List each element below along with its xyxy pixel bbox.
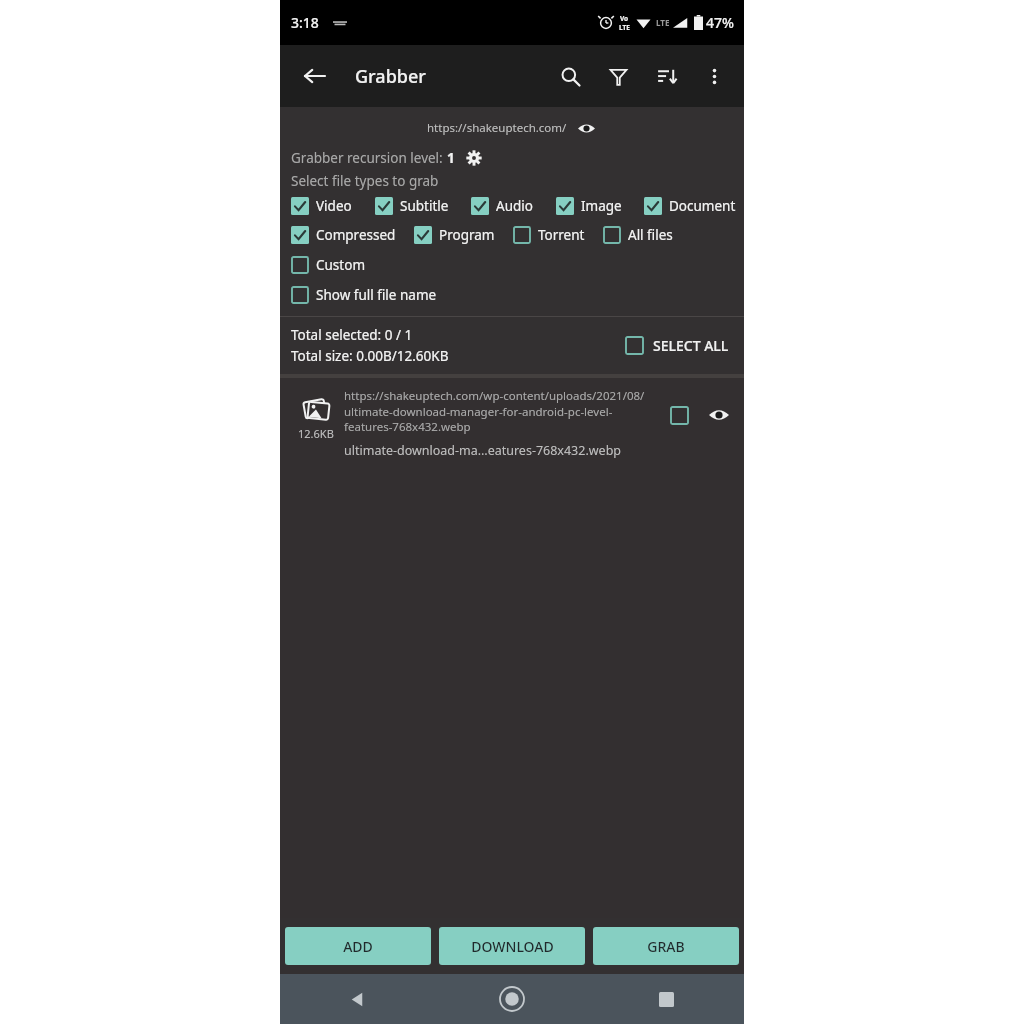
button[interactable]: ADD xyxy=(285,927,431,965)
staticText: Image xyxy=(581,197,622,215)
staticText: Grabber xyxy=(355,64,426,89)
staticText: Select file types to grab xyxy=(291,172,439,190)
button[interactable]: SELECT ALL xyxy=(625,336,733,355)
staticText: https://shakeuptech.com/ xyxy=(427,120,567,136)
button[interactable]: Filter xyxy=(594,52,642,100)
button[interactable]: Compressed xyxy=(291,224,396,246)
button[interactable]: Settings xyxy=(463,147,485,169)
button[interactable]: More options xyxy=(690,52,738,100)
button[interactable]: Back xyxy=(294,56,334,96)
staticText: 12.6KB xyxy=(298,426,334,441)
staticText: Total selected: 0 / 1 xyxy=(291,326,413,344)
button[interactable]: Preview URL xyxy=(575,117,597,139)
staticText: Total size: 0.00B/12.60KB xyxy=(291,347,449,365)
staticText: LTE xyxy=(656,17,670,28)
button[interactable]: Back xyxy=(280,974,434,1024)
button[interactable]: GRAB xyxy=(593,927,739,965)
staticText: Show full file name xyxy=(316,286,437,304)
staticText: Video xyxy=(316,197,352,215)
staticText: Subtitle xyxy=(400,197,449,215)
staticText: 1 xyxy=(447,149,455,167)
button[interactable]: Torrent xyxy=(513,224,585,246)
staticText: 47% xyxy=(706,13,734,32)
staticText: Program xyxy=(439,226,495,244)
button[interactable]: Search xyxy=(546,52,594,100)
staticText: DOWNLOAD xyxy=(471,937,554,956)
button[interactable]: Recents xyxy=(589,974,744,1024)
button[interactable]: 12.6KB xyxy=(280,378,744,469)
button[interactable]: Home xyxy=(434,974,589,1024)
staticText: ultimate-download-ma…eatures-768x432.web… xyxy=(344,442,622,459)
staticText: LTE xyxy=(619,23,630,32)
button[interactable]: Show full file name xyxy=(291,284,437,306)
button[interactable]: Image xyxy=(556,195,622,217)
button[interactable]: DOWNLOAD xyxy=(439,927,585,965)
button[interactable]: Program xyxy=(414,224,495,246)
staticText: Audio xyxy=(496,197,533,215)
button[interactable]: Audio xyxy=(471,195,533,217)
staticText: Grabber recursion level: xyxy=(291,149,447,167)
button[interactable]: Sort xyxy=(642,52,690,100)
button[interactable]: Preview file xyxy=(704,400,734,430)
staticText: Custom xyxy=(316,256,366,274)
staticText: https://shakeuptech.com/wp-content/uploa… xyxy=(344,388,658,434)
staticText: GRAB xyxy=(647,937,685,956)
button[interactable]: Select file xyxy=(664,400,694,430)
staticText: Document xyxy=(669,197,736,215)
staticText: Vo xyxy=(620,14,629,23)
staticText: Torrent xyxy=(538,226,585,244)
button[interactable]: Subtitle xyxy=(375,195,449,217)
staticText: All files xyxy=(628,226,673,244)
staticText: SELECT ALL xyxy=(653,336,729,355)
staticText: 3:18 xyxy=(291,13,319,32)
button[interactable]: All files xyxy=(603,224,673,246)
button[interactable]: Document xyxy=(644,195,736,217)
staticText: ADD xyxy=(343,937,373,956)
staticText: Compressed xyxy=(316,226,396,244)
button[interactable]: Video xyxy=(291,195,352,217)
button[interactable]: Custom xyxy=(291,254,366,276)
